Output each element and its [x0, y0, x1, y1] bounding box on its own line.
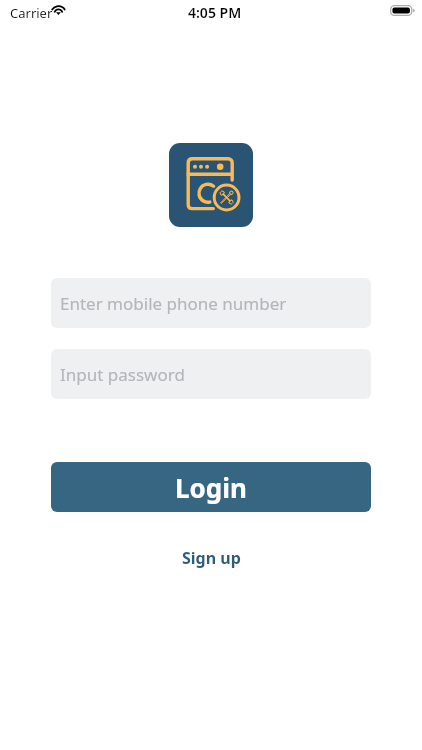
- staticText: Sign up: [182, 547, 241, 569]
- staticText: 4:05 PM: [188, 3, 242, 22]
- staticText: Enter mobile phone number: [60, 292, 287, 315]
- staticText: Login: [175, 470, 247, 505]
- button[interactable]: Input password: [51, 349, 371, 399]
- other: Appliance repair app logo: [169, 143, 253, 227]
- button[interactable]: Sign up: [174, 539, 249, 577]
- staticText: Carrier: [10, 4, 53, 22]
- button[interactable]: Enter mobile phone number: [51, 278, 371, 328]
- button[interactable]: Login: [51, 462, 371, 512]
- staticText: Input password: [60, 363, 185, 386]
